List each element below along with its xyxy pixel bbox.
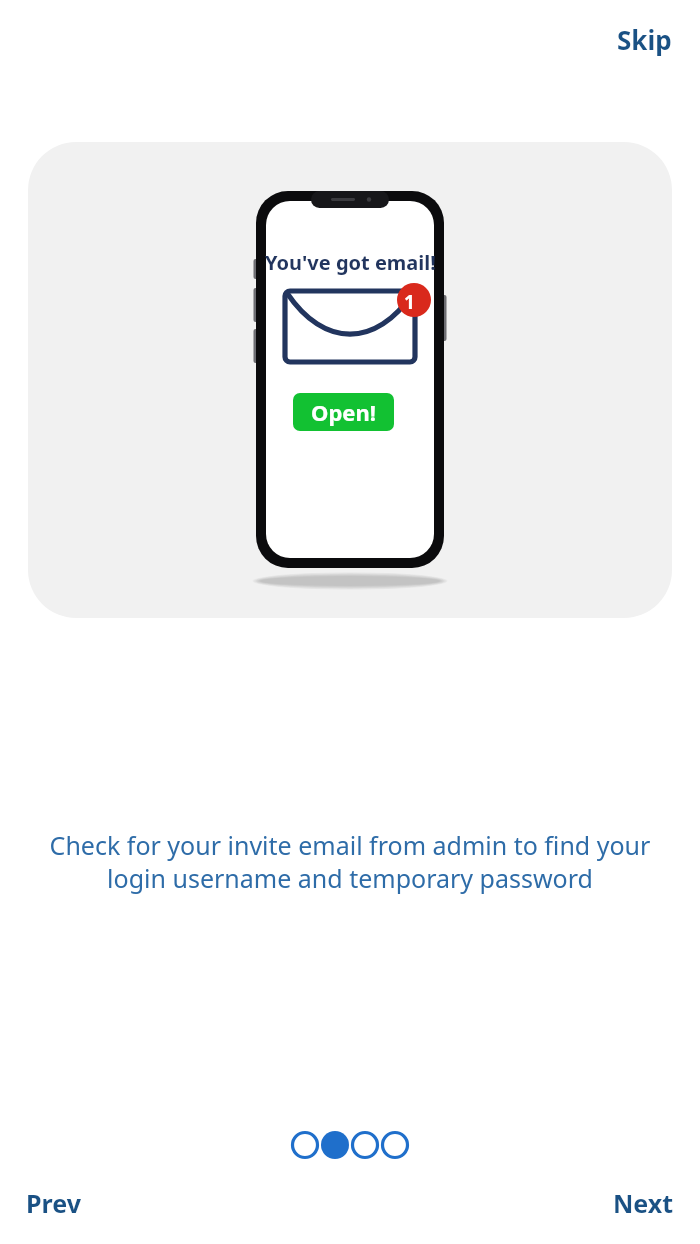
staticText: Next: [613, 1186, 674, 1220]
button[interactable]: [291, 1131, 319, 1159]
button[interactable]: [381, 1131, 409, 1159]
button[interactable]: [321, 1131, 349, 1159]
button[interactable]: Open!: [293, 393, 394, 431]
button[interactable]: Next: [607, 1180, 680, 1226]
staticText: Open!: [311, 397, 376, 427]
staticText: 1: [404, 289, 415, 311]
button[interactable]: Skip: [613, 16, 676, 63]
staticText: Prev: [26, 1186, 81, 1220]
staticText: You've got email!: [265, 249, 436, 276]
button[interactable]: Prev: [20, 1180, 87, 1226]
button[interactable]: [351, 1131, 379, 1159]
staticText: Check for your invite email from admin t…: [24, 828, 676, 895]
staticText: Skip: [617, 22, 672, 57]
